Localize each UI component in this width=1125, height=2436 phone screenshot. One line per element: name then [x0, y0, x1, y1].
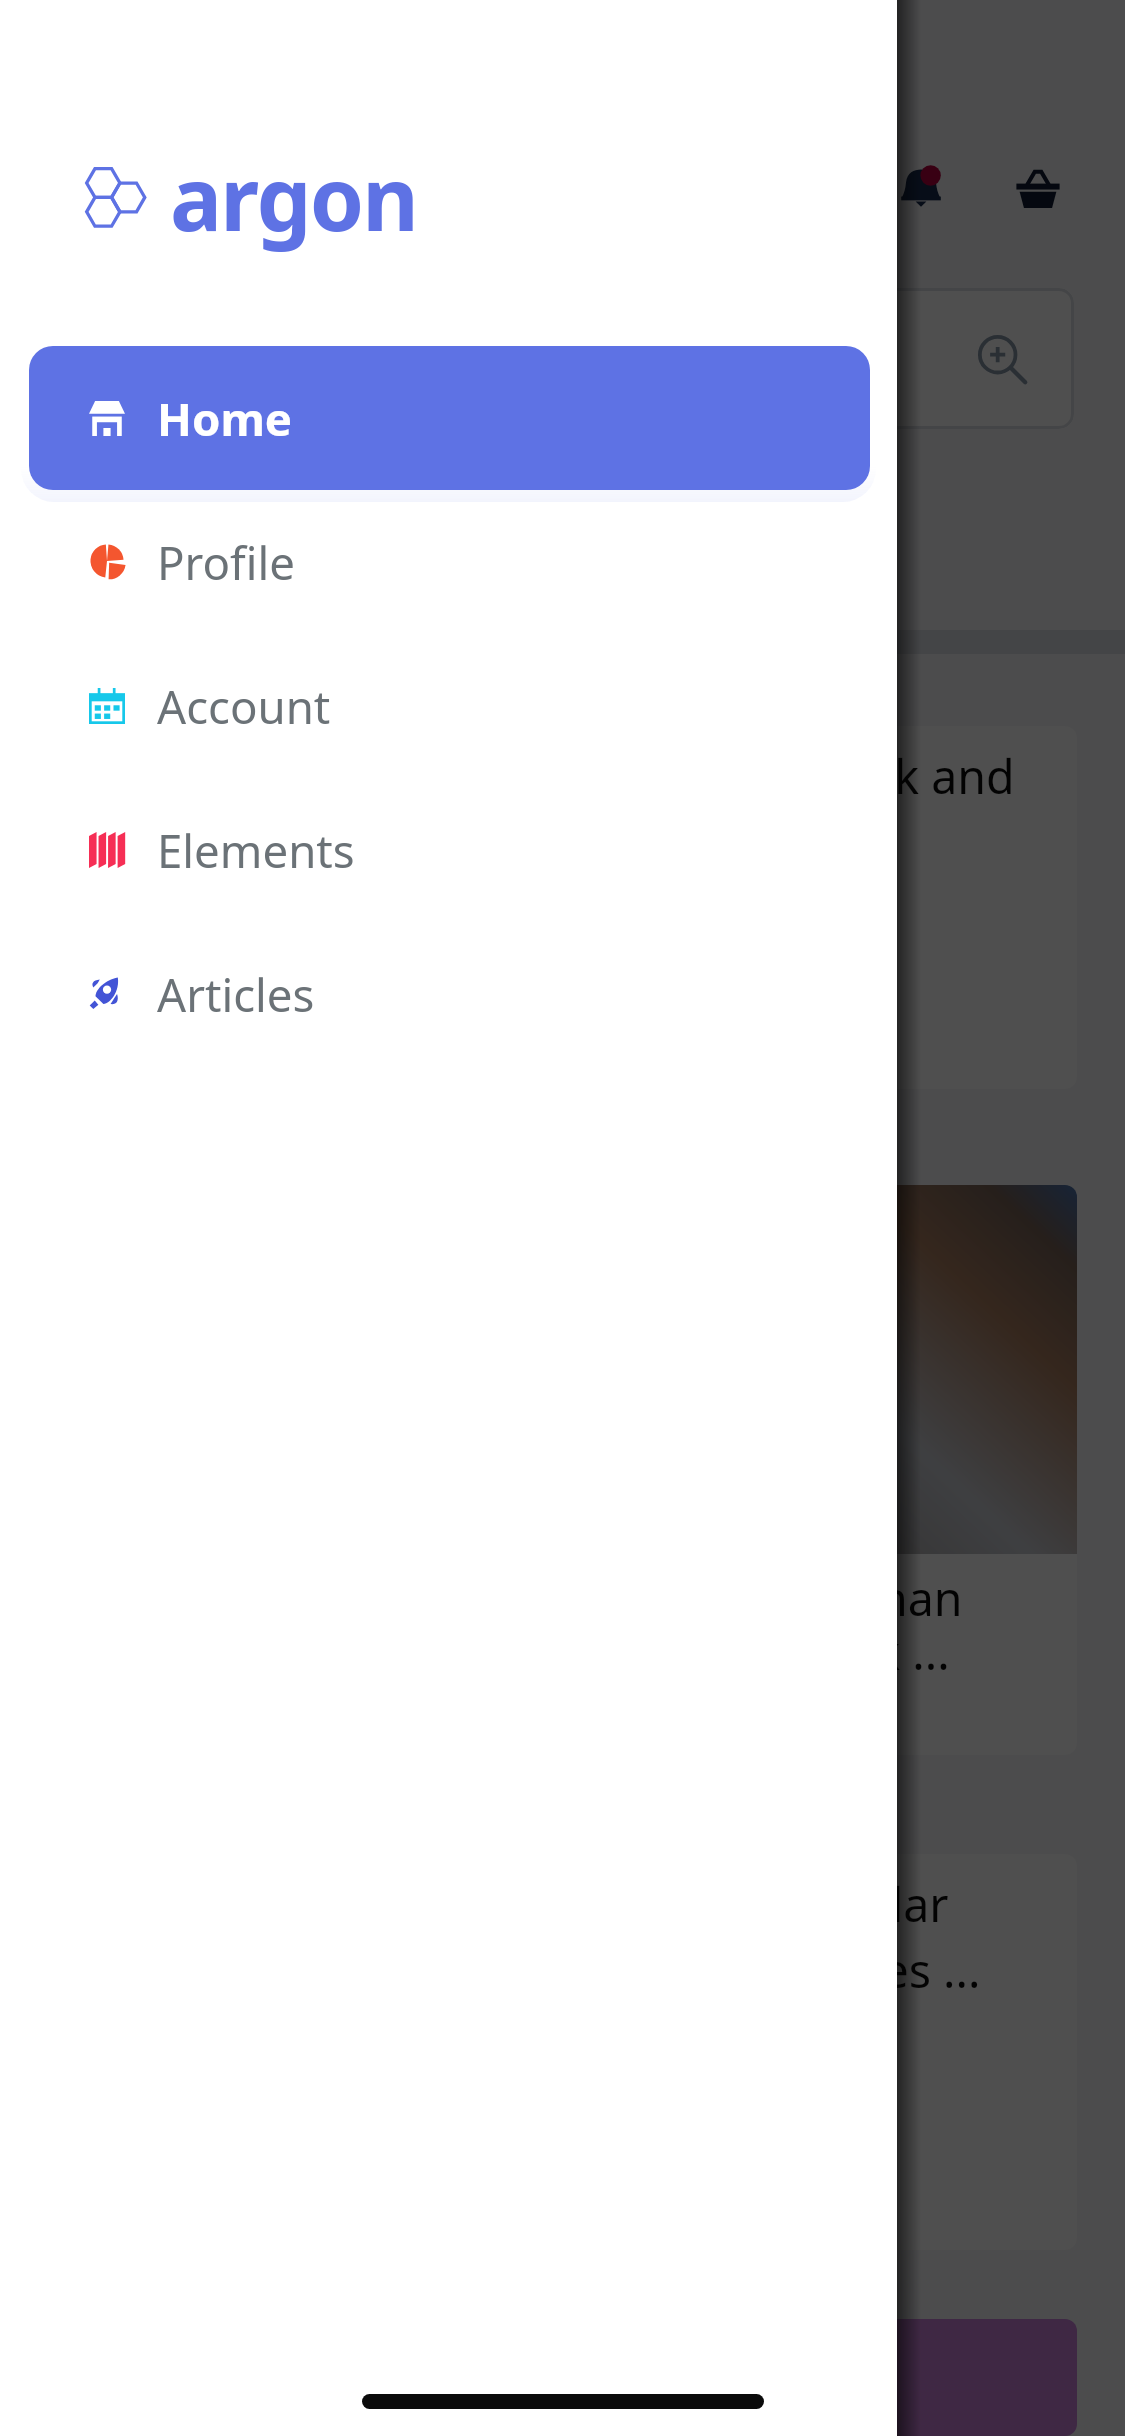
staticText: Articles: [157, 963, 315, 1025]
staticText: Fashion is a popular style, especially t…: [63, 1566, 963, 1629]
staticText: Elements: [157, 819, 355, 881]
staticText: Home: [157, 387, 293, 449]
button[interactable]: Notifications: [891, 162, 951, 216]
staticText: What are you looking for?: [102, 328, 645, 389]
staticText: Account: [157, 675, 331, 737]
button[interactable]: Argon is a great free UI package popular: [48, 1854, 1077, 2250]
button[interactable]: Fashion is a popular style, especially t…: [48, 1185, 1077, 1755]
button[interactable]: Account: [29, 634, 870, 778]
button[interactable]: Profile: [29, 490, 870, 634]
staticText: Profile: [157, 531, 296, 593]
staticText: Argon is a great free UI package popular: [63, 1872, 949, 1935]
staticText: Ice cream is made with sweetened milk an…: [63, 744, 1015, 807]
staticText: in clothing, footwear, accessories, mak …: [63, 1620, 950, 1683]
button[interactable]: Elements: [29, 778, 870, 922]
button[interactable]: Home: [29, 346, 870, 490]
button[interactable]: Articles: [29, 922, 870, 1066]
button[interactable]: What are you looking for?: [48, 288, 1074, 429]
staticText: based on Galio framework that features .…: [63, 1938, 981, 2001]
staticText: argon: [170, 138, 418, 256]
button[interactable]: Ice cream is made with sweetened milk an…: [48, 726, 1077, 1089]
button[interactable]: Cart: [1011, 162, 1065, 216]
button[interactable]: [48, 2319, 1077, 2436]
